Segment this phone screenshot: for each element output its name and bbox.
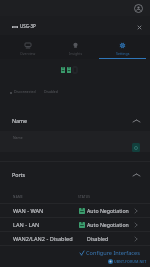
button[interactable]: Ports — [0, 167, 150, 182]
staticText: Settings — [116, 51, 130, 56]
button[interactable]: Name — [0, 113, 150, 128]
button[interactable]: WAN2/LAN2 - Disabled — [0, 232, 150, 245]
staticText: UBNT-FORUM.NET — [114, 259, 147, 264]
button[interactable]: Overview — [4, 35, 52, 59]
staticText: LAN - LAN — [13, 221, 40, 229]
button[interactable]: LAN - LAN — [0, 218, 150, 231]
staticText: Auto Negotiation — [87, 221, 129, 228]
staticText: Auto Negotiation — [87, 207, 129, 214]
staticText: Configure Interfaces — [86, 249, 140, 257]
staticText: Name — [13, 135, 23, 140]
staticText: Overview — [20, 51, 36, 56]
staticText: Insights — [69, 51, 83, 56]
staticText: USG-3P — [20, 23, 36, 29]
staticText: Name — [12, 117, 27, 124]
staticText: NAME — [13, 195, 23, 199]
button[interactable]: Settings — [99, 35, 146, 59]
staticText: Disconnected — [14, 89, 36, 94]
staticText: STATUS — [78, 195, 91, 199]
staticText: WAN - WAN — [13, 207, 44, 215]
button[interactable]: Configure Interfaces — [0, 247, 150, 258]
button[interactable]: Insights — [52, 35, 99, 59]
button[interactable]: Account — [133, 3, 143, 13]
button[interactable]: WAN - WAN — [0, 204, 150, 217]
staticText: WAN2/LAN2 - Disabled — [13, 235, 73, 243]
button[interactable]: Close — [134, 22, 144, 32]
staticText: Disabled — [44, 89, 58, 94]
staticText: Disabled — [87, 235, 109, 242]
staticText: Ports — [12, 171, 26, 178]
